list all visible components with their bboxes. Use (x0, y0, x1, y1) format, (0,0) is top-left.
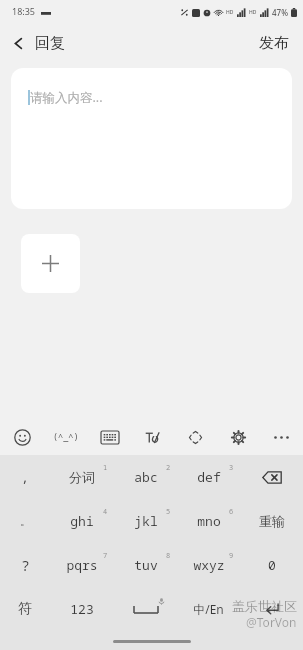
button[interactable]: tuv (114, 543, 177, 587)
button[interactable]: 0 (240, 543, 303, 587)
staticText: @TorVon (246, 614, 297, 630)
staticText: ghi (70, 512, 94, 530)
button[interactable]: Emoji (0, 419, 44, 455)
button[interactable]: 重输 (240, 499, 303, 543)
button[interactable]: 123 (50, 587, 114, 631)
button[interactable]: wxyz (177, 543, 240, 587)
button[interactable]: Enter (240, 587, 303, 631)
staticText: def (197, 468, 221, 486)
staticText: 6 (229, 507, 234, 517)
button[interactable]: Settings (217, 419, 260, 455)
staticText: 47% (272, 7, 288, 18)
staticText: 中/En (193, 601, 224, 617)
staticText: 0 (268, 556, 276, 574)
staticText: abc (134, 468, 158, 486)
staticText: 3 (229, 463, 234, 473)
button[interactable]: def (177, 455, 240, 499)
staticText: mno (197, 512, 221, 530)
button[interactable]: jkl (114, 499, 177, 543)
staticText: 2 (166, 463, 171, 473)
button[interactable]: abc (114, 455, 177, 499)
staticText: 发布 (259, 34, 289, 53)
staticText: 5 (166, 507, 171, 517)
staticText: (^_^) (53, 431, 79, 443)
staticText: 4 (103, 507, 108, 517)
staticText: 符 (18, 600, 32, 618)
staticText: wxyz (193, 556, 225, 574)
button[interactable]: Add image (21, 234, 80, 293)
staticText: HD (226, 9, 234, 16)
staticText: HD (249, 9, 257, 16)
staticText: 盖乐世社区 (232, 598, 297, 614)
button[interactable]: Space (114, 587, 177, 631)
button[interactable]: ghi (50, 499, 114, 543)
button[interactable]: Handwriting (131, 419, 174, 455)
other: Back (12, 37, 25, 50)
button[interactable]: 符 (0, 587, 50, 631)
staticText: 123 (70, 600, 94, 618)
button[interactable]: 分词 (50, 455, 114, 499)
staticText: 。 (20, 514, 31, 528)
staticText: tuv (134, 556, 158, 574)
staticText: 重输 (259, 513, 285, 529)
button[interactable]: 中/En (177, 587, 240, 631)
button[interactable]: Kaomoji (44, 419, 88, 455)
button[interactable]: Back (0, 28, 75, 59)
button[interactable]: ? (0, 543, 50, 587)
button[interactable]: mno (177, 499, 240, 543)
button[interactable]: , (0, 455, 50, 499)
staticText: 请输入内容... (30, 89, 103, 106)
staticText: 回复 (35, 34, 65, 53)
staticText: 分词 (69, 469, 95, 485)
staticText: 18:35 (12, 5, 36, 17)
staticText: jkl (134, 512, 158, 530)
button[interactable]: Backspace (240, 455, 303, 499)
staticText: ? (21, 556, 30, 575)
staticText: 1 (103, 463, 108, 473)
staticText: 7 (103, 551, 108, 561)
staticText: pqrs (66, 556, 98, 574)
button[interactable]: More (260, 419, 303, 455)
staticText: 8 (166, 551, 171, 561)
staticText: , (21, 468, 29, 486)
button[interactable]: Move (174, 419, 217, 455)
button[interactable]: pqrs (50, 543, 114, 587)
staticText: 9 (229, 551, 234, 561)
button[interactable]: Keyboard (88, 419, 131, 455)
button[interactable]: 发布 (245, 28, 303, 59)
button[interactable]: 请输入内容... (11, 68, 292, 209)
